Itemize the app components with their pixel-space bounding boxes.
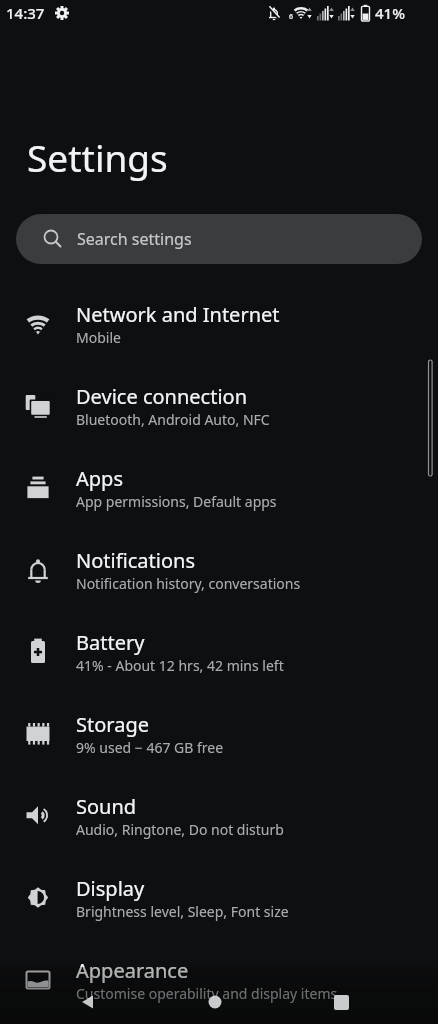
staticText: Search settings (77, 228, 192, 250)
button[interactable]: Network and Internet (0, 283, 438, 365)
staticText: Appearance (76, 957, 189, 984)
button[interactable]: Apps (0, 447, 438, 529)
staticText: Settings (27, 132, 168, 182)
button[interactable]: Notifications (0, 529, 438, 611)
staticText: Bluetooth, Android Auto, NFC (76, 410, 270, 429)
staticText: Device connection (76, 383, 248, 410)
staticText: Network and Internet (76, 301, 280, 328)
staticText: Apps (76, 465, 123, 492)
staticText: Storage (76, 711, 149, 738)
button[interactable]: Device connection (0, 365, 438, 447)
button[interactable]: Sound (0, 775, 438, 857)
button[interactable]: Appearance (0, 939, 438, 1021)
staticText: Customise operability and display items (76, 984, 338, 1003)
staticText: 41% - About 12 hrs, 42 mins left (76, 656, 284, 675)
staticText: 6 (289, 12, 294, 22)
button[interactable] (66, 980, 110, 1024)
staticText: Audio, Ringtone, Do not disturb (76, 820, 284, 839)
staticText: 14:37 (6, 3, 45, 23)
button[interactable] (319, 980, 363, 1024)
staticText: Notifications (76, 547, 195, 574)
button[interactable]: Storage (0, 693, 438, 775)
button[interactable]: Battery (0, 611, 438, 693)
staticText: Battery (76, 629, 145, 656)
staticText: Notification history, conversations (76, 574, 301, 593)
button[interactable] (193, 980, 237, 1024)
button[interactable]: Search settings (16, 214, 422, 264)
staticText: App permissions, Default apps (76, 492, 277, 511)
staticText: 41% (375, 3, 405, 23)
staticText: Sound (76, 793, 137, 820)
staticText: Brightness level, Sleep, Font size (76, 902, 289, 921)
staticText: 9% used − 467 GB free (76, 738, 224, 757)
button[interactable]: Display (0, 857, 438, 939)
staticText: Display (76, 875, 145, 902)
staticText: Mobile (76, 328, 121, 347)
